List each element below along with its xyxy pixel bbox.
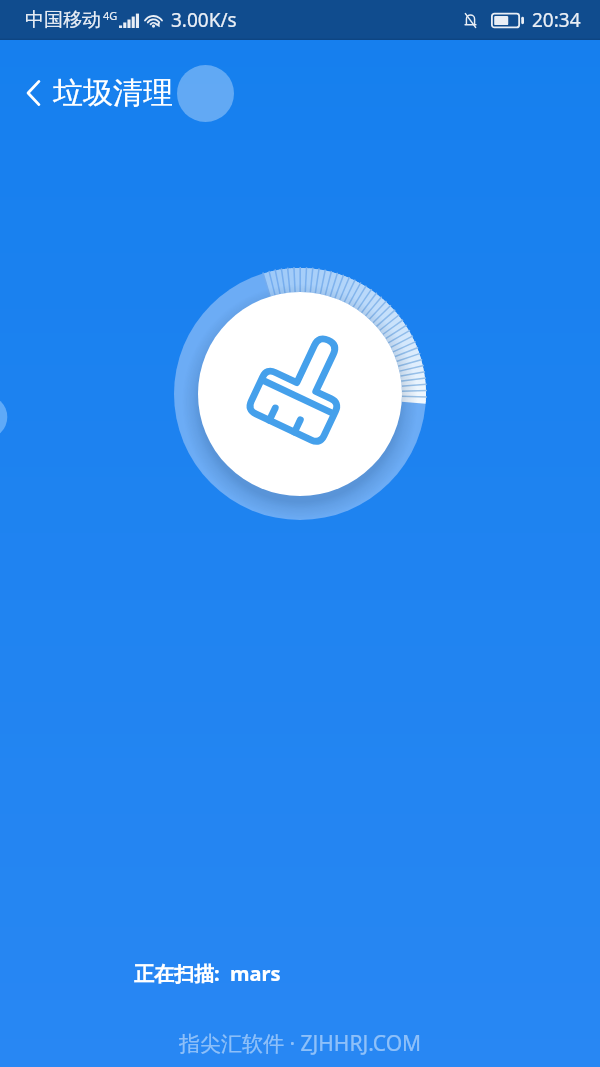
staticText: 4G — [103, 8, 118, 23]
button[interactable]: Back — [9, 69, 57, 117]
staticText: 20:34 — [532, 7, 581, 33]
staticText: 3.00K/s — [171, 7, 237, 33]
staticText: 指尖汇软件 · ZJHHRJ.COM — [179, 1029, 422, 1058]
staticText: 垃圾清理 — [53, 74, 173, 112]
staticText: 正在扫描: mars — [134, 960, 281, 987]
staticText: 中国移动 — [25, 8, 101, 32]
